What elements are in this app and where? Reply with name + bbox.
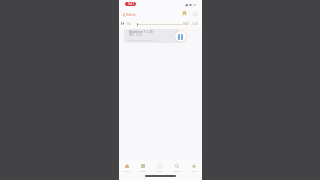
staticText: -1:30	[191, 22, 198, 26]
button[interactable]: Bible	[135, 164, 151, 172]
button[interactable]: Seek	[136, 21, 182, 27]
staticText: 0:02	[183, 22, 189, 26]
staticText: Matthew 1:1-25	[129, 29, 153, 33]
button[interactable]: Recording status	[125, 2, 136, 6]
staticText: Bible	[126, 12, 136, 18]
staticText: More	[191, 169, 197, 172]
button[interactable]: Bookmarks	[181, 10, 188, 17]
button[interactable]: Search	[168, 164, 185, 172]
button[interactable]: Bible	[122, 11, 137, 19]
staticText: Plans	[156, 169, 163, 172]
button[interactable]: Plans	[151, 164, 168, 172]
button[interactable]: Rewind	[120, 21, 125, 26]
staticText: Home	[124, 169, 131, 172]
staticText: 9:41	[128, 2, 134, 6]
staticText: NIV · 5:12	[129, 33, 142, 37]
button[interactable]: Matthew 1:1-25	[124, 29, 179, 43]
button[interactable]: Home	[119, 164, 135, 172]
button[interactable]: More	[185, 164, 202, 172]
button[interactable]: Playback speed	[126, 21, 131, 26]
staticText: Bible	[140, 169, 146, 172]
staticText: Search	[173, 169, 181, 172]
staticText: 1x	[127, 22, 131, 26]
button[interactable]: Pause	[174, 30, 187, 43]
button[interactable]: Settings	[192, 10, 199, 17]
